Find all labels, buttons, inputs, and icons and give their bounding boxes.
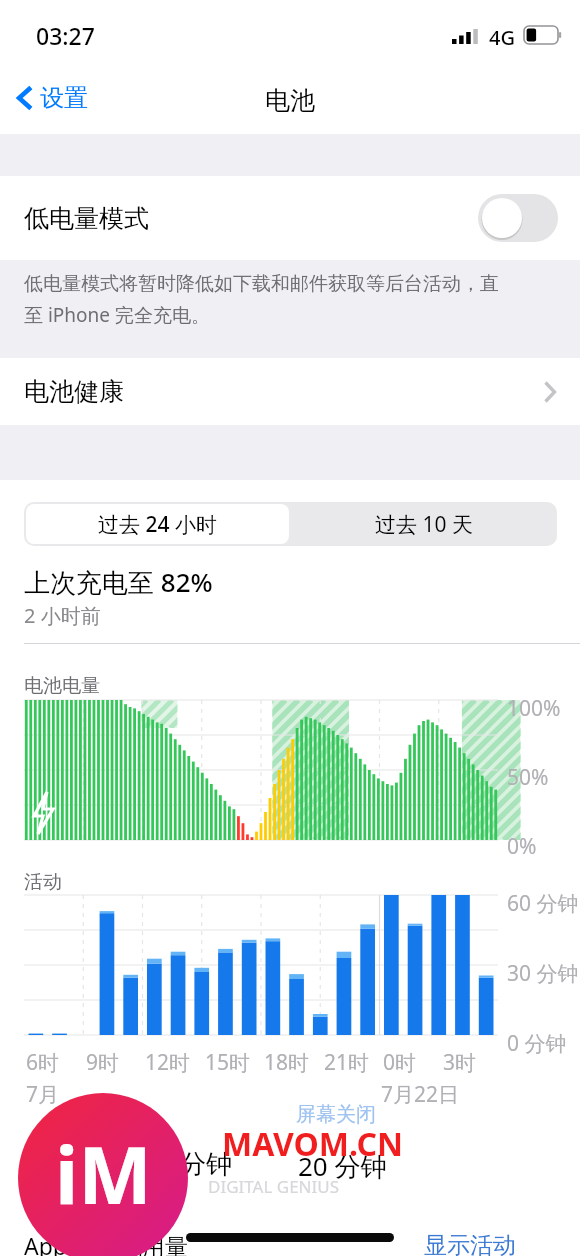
staticText: 21时 — [324, 1048, 370, 1077]
button[interactable]: 低电量模式开关 — [478, 194, 558, 242]
button[interactable]: 低电量模式 — [0, 176, 580, 260]
staticText: 电池 — [265, 85, 315, 116]
button[interactable]: 过去 10 天 — [290, 502, 557, 546]
staticText: 显示活动 — [424, 1231, 516, 1256]
staticText: 至 iPhone 完全充电。 — [24, 302, 210, 328]
button[interactable]: 过去 24 小时 — [24, 502, 290, 546]
staticText: 设置 — [40, 83, 88, 113]
staticText: App 的电池用量 — [24, 1230, 188, 1256]
staticText: 30 分钟 — [507, 959, 579, 988]
staticText: 过去 24 小时 — [98, 510, 217, 539]
button[interactable]: App 的电池用量 — [24, 1225, 188, 1256]
staticText: 活动 — [24, 870, 62, 894]
staticText: 6时 — [26, 1048, 60, 1077]
staticText: 0% — [507, 832, 537, 861]
staticText: 3时 — [443, 1048, 477, 1077]
staticText: 7月 — [26, 1080, 60, 1109]
staticText: 03:27 — [36, 20, 95, 51]
staticText: 0 分钟 — [507, 1029, 567, 1058]
staticText: 低电量模式 — [24, 203, 149, 234]
staticText: 0时 — [383, 1048, 417, 1077]
staticText: 100% — [507, 694, 561, 723]
staticText: 7月22日 — [381, 1080, 460, 1109]
button[interactable]: 设置 — [10, 74, 98, 122]
staticText: 60 分钟 — [507, 889, 579, 918]
staticText: 低电量模式将暂时降低如下载和邮件获取等后台活动，直 — [24, 272, 499, 296]
staticText: 50% — [507, 763, 549, 792]
staticText: 分钟 — [180, 1148, 232, 1181]
button[interactable]: 电池健康 — [0, 358, 580, 425]
staticText: DIGITAL GENIUS — [208, 1175, 340, 1198]
staticText: 4G — [489, 24, 515, 51]
staticText: iM — [55, 1121, 152, 1227]
staticText: 上次充电至 82% — [24, 564, 213, 600]
staticText: 12时 — [145, 1048, 191, 1077]
staticText: 电池健康 — [24, 376, 124, 407]
staticText: MAVOM.CN — [222, 1122, 403, 1166]
staticText: 电池电量 — [24, 674, 100, 698]
staticText: 2 小时前 — [24, 602, 101, 629]
staticText: 过去 10 天 — [375, 510, 473, 539]
staticText: 9时 — [86, 1048, 120, 1077]
staticText: 15时 — [205, 1048, 251, 1077]
staticText: 屏幕关闭 — [296, 1102, 376, 1127]
staticText: 18时 — [264, 1048, 310, 1077]
button[interactable]: 显示活动 — [424, 1225, 516, 1256]
staticText: 20 分钟 — [298, 1148, 387, 1184]
